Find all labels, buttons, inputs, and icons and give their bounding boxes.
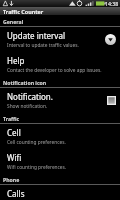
staticText: Traffic Counter: [3, 8, 44, 15]
button[interactable]: Update interval options: [105, 34, 116, 45]
staticText: Cell: [7, 127, 21, 138]
staticText: Phone: [3, 176, 20, 183]
staticText: Wifi counting preferences.: [7, 164, 67, 171]
button[interactable]: Calls: [0, 185, 120, 200]
staticText: Cell counting preferences.: [7, 139, 66, 146]
button[interactable]: Cell: [0, 124, 120, 149]
button[interactable]: Show notification: [107, 96, 116, 105]
button[interactable]: Update interval: [0, 27, 120, 52]
staticText: General: [3, 18, 24, 25]
staticText: Wifi: [7, 152, 22, 163]
button[interactable]: Help: [0, 52, 120, 77]
staticText: Traffic: [3, 115, 20, 122]
staticText: Notification icon: [3, 79, 47, 86]
staticText: Notification.: [7, 91, 53, 102]
staticText: Help: [7, 55, 25, 66]
button[interactable]: Wifi: [0, 149, 120, 174]
staticText: 14:38: [105, 0, 119, 7]
staticText: Interval to update traffic values.: [7, 42, 79, 49]
staticText: Update interval: [7, 30, 65, 41]
staticText: Show notification.: [7, 103, 48, 110]
button[interactable]: Notification.: [0, 88, 120, 113]
staticText: Contact the developer to solve app issue…: [7, 67, 102, 74]
staticText: Calls: [7, 188, 25, 197]
